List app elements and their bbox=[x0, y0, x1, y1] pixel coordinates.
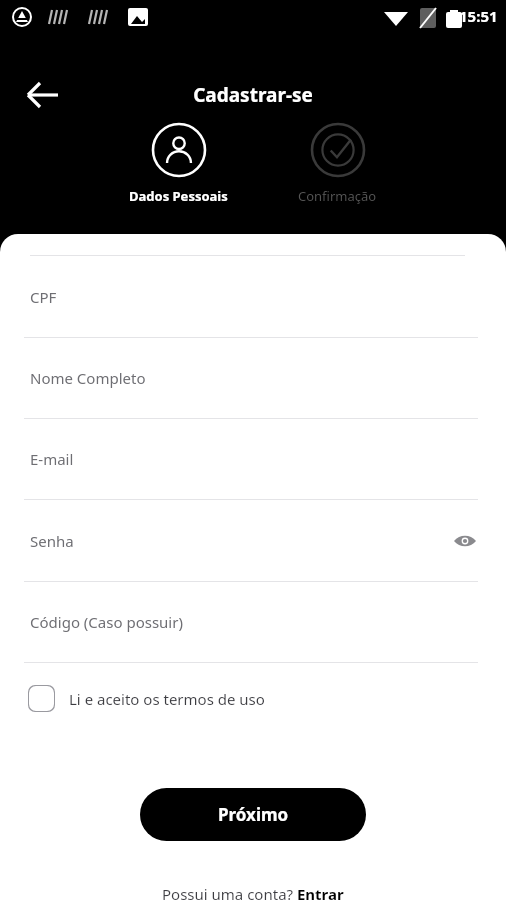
staticText: Confirmação bbox=[298, 187, 377, 205]
staticText: 15:51 bbox=[459, 6, 498, 26]
button[interactable]: Confirmação bbox=[292, 122, 383, 205]
staticText: Li e aceito os termos de uso bbox=[69, 689, 265, 709]
button[interactable]: Próximo bbox=[140, 788, 366, 841]
staticText: Código (Caso possuir) bbox=[30, 612, 183, 632]
button[interactable]: Dados Pessoais bbox=[123, 122, 234, 205]
button[interactable]: Nome Completo bbox=[0, 349, 506, 407]
staticText: CPF bbox=[30, 287, 57, 307]
button[interactable]: Li e aceito os termos de uso bbox=[28, 685, 265, 712]
staticText: E-mail bbox=[30, 449, 74, 469]
staticText: Dados Pessoais bbox=[129, 187, 228, 205]
staticText: Senha bbox=[30, 531, 74, 551]
button[interactable]: Possui uma conta? Entrar bbox=[0, 884, 506, 900]
button[interactable]: CPF bbox=[0, 268, 506, 326]
staticText: Próximo bbox=[218, 803, 289, 826]
button[interactable]: E-mail bbox=[0, 430, 506, 488]
button[interactable]: Senha bbox=[0, 512, 506, 570]
button[interactable]: Show password bbox=[450, 526, 480, 556]
staticText: Cadastrar-se bbox=[193, 82, 313, 108]
button[interactable]: Back bbox=[14, 71, 62, 119]
staticText: Possui uma conta? Entrar bbox=[162, 884, 344, 900]
button[interactable]: Código (Caso possuir) bbox=[0, 593, 506, 651]
staticText: Nome Completo bbox=[30, 368, 146, 388]
